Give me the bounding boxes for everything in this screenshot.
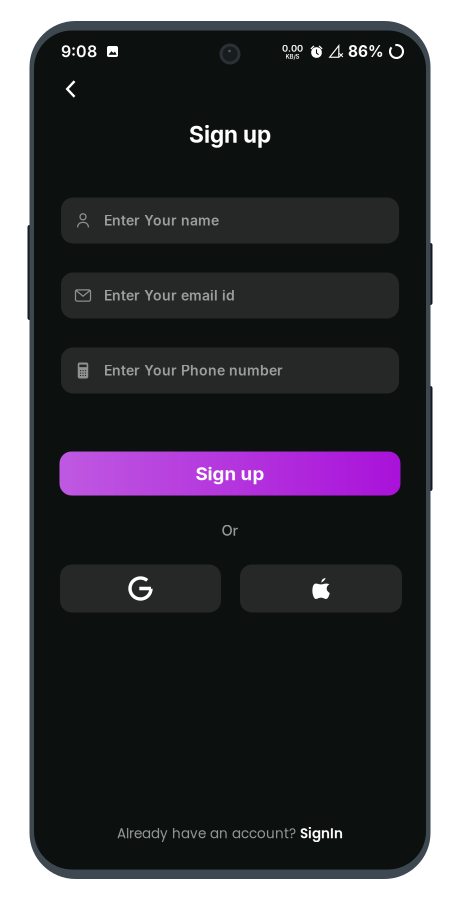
- staticText: 86%: [348, 42, 384, 61]
- button[interactable]: Already have an account?: [34, 816, 426, 850]
- staticText: Already have an account?: [117, 824, 300, 843]
- staticText: Enter Your email id: [104, 287, 235, 304]
- staticText: Enter Your name: [104, 212, 219, 229]
- staticText: KB/S: [285, 53, 299, 60]
- staticText: SignIn: [300, 824, 343, 843]
- button[interactable]: Sign up with Google: [60, 564, 221, 612]
- button[interactable]: Back: [34, 72, 98, 107]
- button[interactable]: Sign up with Apple: [240, 564, 402, 612]
- button[interactable]: Enter Your Phone number: [61, 347, 399, 393]
- staticText: 9:08: [61, 42, 97, 61]
- staticText: Or: [221, 522, 238, 539]
- staticText: Sign up: [195, 462, 264, 485]
- staticText: Enter Your Phone number: [104, 362, 283, 379]
- button[interactable]: Sign up: [59, 451, 400, 495]
- staticText: 0.00: [282, 43, 303, 54]
- staticText: Sign up: [189, 121, 271, 148]
- button[interactable]: Enter Your name: [61, 197, 399, 243]
- button[interactable]: Enter Your email id: [61, 272, 399, 318]
